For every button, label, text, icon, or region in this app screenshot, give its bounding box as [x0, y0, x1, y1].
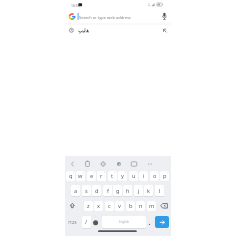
button[interactable]: y — [118, 171, 127, 181]
staticText: Search or type web address — [79, 15, 131, 20]
button[interactable] — [155, 216, 169, 228]
staticText: y — [121, 172, 124, 180]
button[interactable]: t — [108, 171, 117, 181]
button[interactable]: j — [134, 185, 143, 196]
staticText: s — [85, 187, 88, 195]
staticText: u — [132, 172, 136, 180]
staticText: 16:56 — [71, 3, 80, 8]
button[interactable] — [102, 216, 146, 228]
staticText: x — [97, 202, 100, 210]
button[interactable]: d — [92, 185, 101, 196]
button[interactable]: a — [71, 185, 80, 196]
button[interactable]: v — [115, 201, 124, 211]
button[interactable]: / — [82, 216, 91, 228]
staticText: m — [149, 202, 155, 210]
button[interactable]: Search or type web address — [79, 12, 164, 22]
button[interactable]: ?123 — [66, 216, 79, 228]
button[interactable]: k — [144, 185, 153, 196]
staticText: English — [119, 220, 130, 224]
button[interactable]: i — [139, 171, 148, 181]
button[interactable]: u — [129, 171, 138, 181]
button[interactable]: f — [103, 185, 112, 196]
button[interactable]: x — [94, 201, 103, 211]
button[interactable]: h — [123, 185, 132, 196]
staticText: z — [87, 202, 90, 210]
staticText: r — [100, 172, 103, 180]
staticText: / — [85, 218, 88, 226]
button[interactable]: s — [82, 185, 91, 196]
staticText: d — [95, 187, 99, 195]
staticText: w — [78, 172, 83, 180]
staticText: h — [126, 187, 130, 195]
button[interactable]: b — [126, 201, 135, 211]
staticText: a — [74, 187, 78, 195]
staticText: j — [138, 187, 140, 195]
staticText: n — [139, 202, 143, 210]
staticText: b — [129, 202, 133, 210]
button[interactable]: r — [97, 171, 106, 181]
button[interactable]: m — [147, 201, 156, 211]
button[interactable]: e — [87, 171, 96, 181]
button[interactable]: q — [66, 171, 75, 181]
staticText: ?123 — [68, 220, 77, 225]
staticText: l — [159, 187, 161, 195]
staticText: i — [143, 172, 145, 180]
button[interactable]: c — [105, 201, 114, 211]
staticText: p — [163, 172, 167, 180]
button[interactable]: l — [155, 185, 164, 196]
staticText: c — [108, 202, 111, 210]
button[interactable]: o — [150, 171, 159, 181]
staticText: t — [111, 172, 114, 180]
staticText: v — [118, 202, 121, 210]
staticText: o — [153, 172, 157, 180]
staticText: q — [69, 172, 73, 180]
staticText: f — [107, 187, 109, 195]
staticText: k — [147, 187, 150, 195]
button[interactable]: z — [84, 201, 93, 211]
button[interactable]: n — [136, 201, 145, 211]
button[interactable]: g — [113, 185, 122, 196]
staticText: e — [90, 172, 94, 180]
button[interactable]: w — [76, 171, 85, 181]
button[interactable]: p — [160, 171, 169, 181]
staticText: g — [116, 187, 120, 195]
